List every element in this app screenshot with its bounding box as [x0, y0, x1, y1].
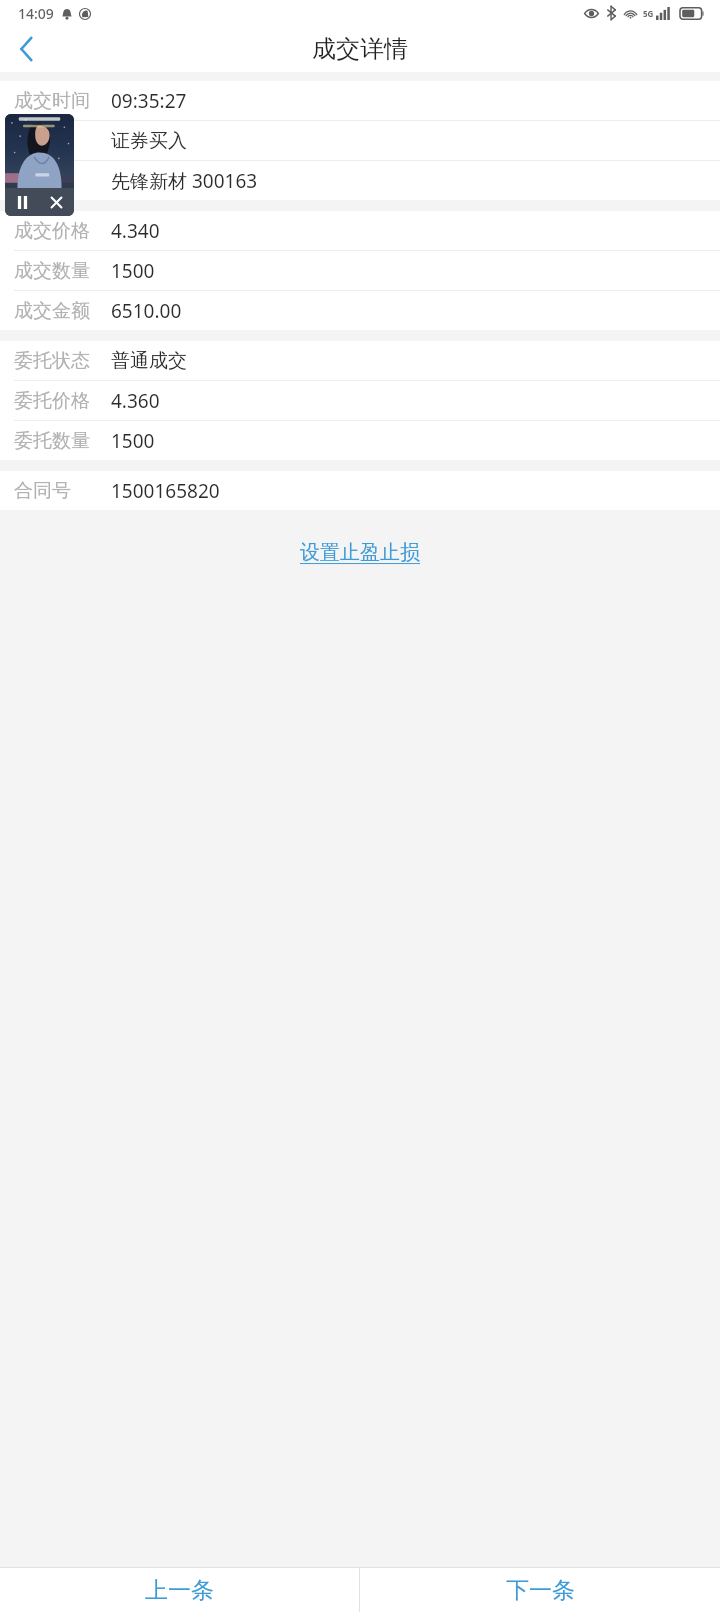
staticText: 4.340 [111, 218, 160, 244]
staticText: 4.360 [111, 388, 160, 414]
button[interactable]: Pause [5, 114, 74, 216]
staticText: 委托数量 [14, 429, 90, 453]
button[interactable]: 下一条 [360, 1568, 720, 1612]
button[interactable]: 上一条 [0, 1568, 359, 1612]
button[interactable]: 委托数量 [0, 421, 720, 460]
staticText: 1500165820 [111, 478, 220, 504]
staticText: 成交价格 [14, 219, 90, 243]
button[interactable]: 成交数量 [0, 251, 720, 291]
staticText: 成交金额 [14, 299, 90, 323]
staticText: 合同号 [14, 479, 71, 503]
button[interactable]: 证券买入 [0, 121, 720, 161]
staticText: 1500 [111, 428, 155, 454]
staticText: 1500 [111, 258, 155, 284]
button[interactable]: 成交金额 [0, 291, 720, 330]
staticText: 5G [643, 8, 654, 19]
button[interactable]: 委托价格 [0, 381, 720, 421]
staticText: 6510.00 [111, 298, 182, 324]
button[interactable]: 先锋新材 300163 [0, 161, 720, 200]
staticText: 成交时间 [14, 89, 90, 113]
staticText: 上一条 [145, 1576, 214, 1605]
staticText: 成交详情 [312, 34, 408, 64]
staticText: 设置止盈止损 [300, 540, 420, 565]
button[interactable]: 合同号 [0, 471, 720, 510]
staticText: 09:35:27 [111, 88, 187, 114]
staticText: 成交数量 [14, 259, 90, 283]
button[interactable]: 成交时间 [0, 81, 720, 121]
staticText: 下一条 [506, 1576, 575, 1605]
staticText: 委托状态 [14, 349, 90, 373]
button[interactable]: Back [0, 26, 52, 72]
button[interactable]: 设置止盈止损 [284, 532, 436, 573]
staticText: 先锋新材 300163 [111, 168, 258, 194]
button[interactable]: Close [39, 188, 74, 216]
staticText: 委托价格 [14, 389, 90, 413]
button[interactable]: 成交价格 [0, 211, 720, 251]
staticText: 证券买入 [111, 129, 187, 153]
button[interactable]: 委托状态 [0, 341, 720, 381]
staticText: 普通成交 [111, 349, 187, 373]
staticText: 14:09 [18, 4, 54, 23]
button[interactable]: Pause [5, 188, 39, 216]
